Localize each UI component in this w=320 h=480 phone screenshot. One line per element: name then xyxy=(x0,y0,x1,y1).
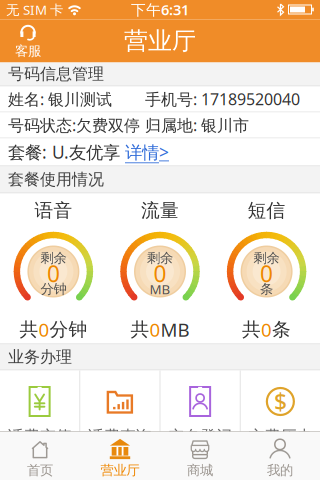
staticText: 客服 xyxy=(15,43,41,59)
staticText: 条 xyxy=(272,318,291,341)
staticText: 短信 xyxy=(248,199,286,222)
staticText: 0 xyxy=(47,258,60,288)
staticText: 语音 xyxy=(34,199,72,222)
staticText: 无 SIM 卡 xyxy=(6,1,63,18)
button[interactable]: 实名登记 xyxy=(160,370,240,480)
staticText: 0 xyxy=(261,317,272,342)
staticText: $ xyxy=(274,386,287,416)
staticText: 套餐使用情况 xyxy=(8,170,104,189)
staticText: 0 xyxy=(38,317,49,342)
staticText: 交费历史 xyxy=(248,426,312,446)
staticText: 流量 xyxy=(141,199,179,222)
button[interactable]: 营业厅 xyxy=(80,432,160,480)
button[interactable]: 详情> xyxy=(125,140,169,163)
staticText: 条 xyxy=(260,281,273,297)
staticText: 商城 xyxy=(187,462,213,479)
staticText: 归属地: 银川市 xyxy=(145,114,249,136)
button[interactable]: 我的 xyxy=(240,432,320,480)
staticText: 分钟 xyxy=(49,318,87,341)
staticText: MB xyxy=(160,317,189,342)
staticText: 0 xyxy=(260,258,273,288)
staticText: 首页 xyxy=(27,462,53,479)
staticText: 姓名: 银川测试 xyxy=(8,88,112,110)
staticText: MB xyxy=(149,280,170,298)
staticText: 话费充值 xyxy=(8,426,72,446)
staticText: 号码状态:欠费双停 xyxy=(8,114,140,136)
staticText: 详情> xyxy=(125,140,169,163)
button[interactable]: 话费查询 xyxy=(80,370,159,480)
staticText: 实名登记 xyxy=(168,426,232,446)
staticText: 业务办理 xyxy=(8,347,72,367)
staticText: 剩余 xyxy=(254,250,280,266)
staticText: 剩余 xyxy=(147,250,173,266)
staticText: 0 xyxy=(153,258,166,288)
staticText: 话费查询 xyxy=(88,426,152,446)
staticText: 共 xyxy=(130,318,149,341)
button[interactable]: 商城 xyxy=(160,432,240,480)
button[interactable]: 交费历史 xyxy=(241,370,320,480)
staticText: 0 xyxy=(149,317,160,342)
staticText: 我的 xyxy=(267,462,293,479)
staticText: 下午6:31 xyxy=(131,0,189,19)
button[interactable]: 首页 xyxy=(0,432,80,480)
staticText: 营业厅 xyxy=(124,26,196,56)
button[interactable]: 客服 xyxy=(0,23,49,59)
staticText: 手机号: 17189520040 xyxy=(145,88,300,110)
button[interactable]: 话费充值 xyxy=(0,370,79,480)
staticText: 分钟 xyxy=(40,281,66,297)
staticText: 营业厅 xyxy=(100,462,139,479)
staticText: 套餐: U.友优享 xyxy=(8,140,125,163)
staticText: 共 xyxy=(19,318,38,341)
staticText: 共 xyxy=(242,318,261,341)
staticText: 号码信息管理 xyxy=(8,64,104,84)
staticText: 剩余 xyxy=(40,250,66,266)
